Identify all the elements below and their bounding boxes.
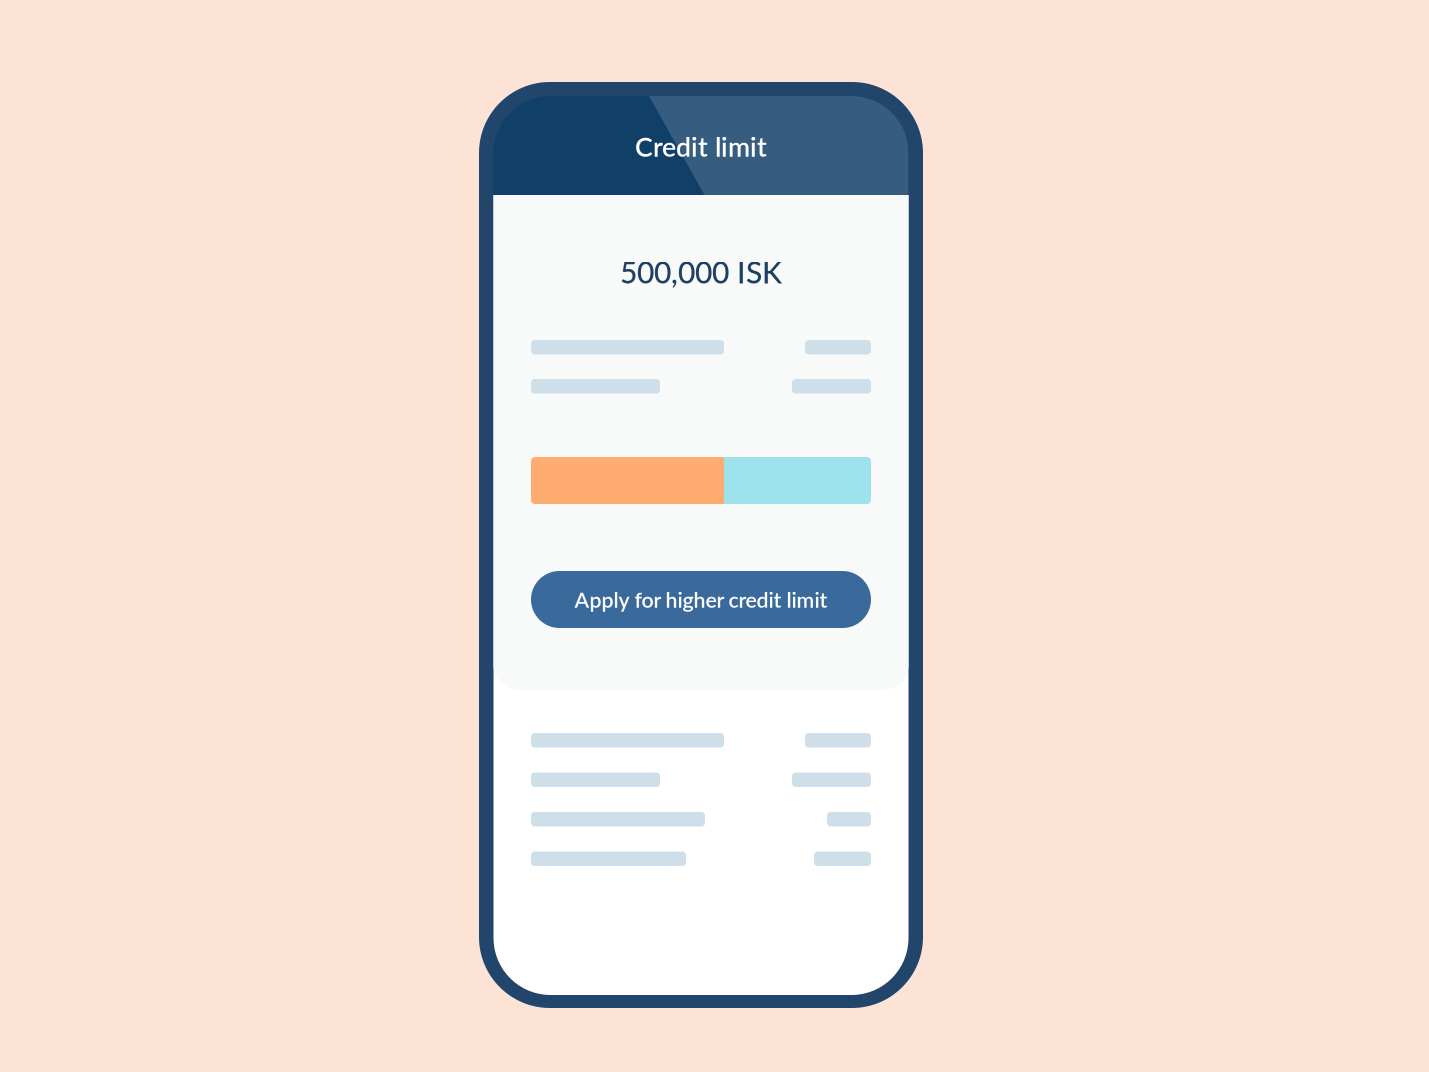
staticText: Apply for higher credit limit — [574, 587, 827, 612]
button[interactable]: Apply for higher credit limit — [531, 571, 871, 628]
staticText: Credit limit — [635, 130, 767, 162]
staticText: 500,000 ISK — [620, 254, 782, 290]
